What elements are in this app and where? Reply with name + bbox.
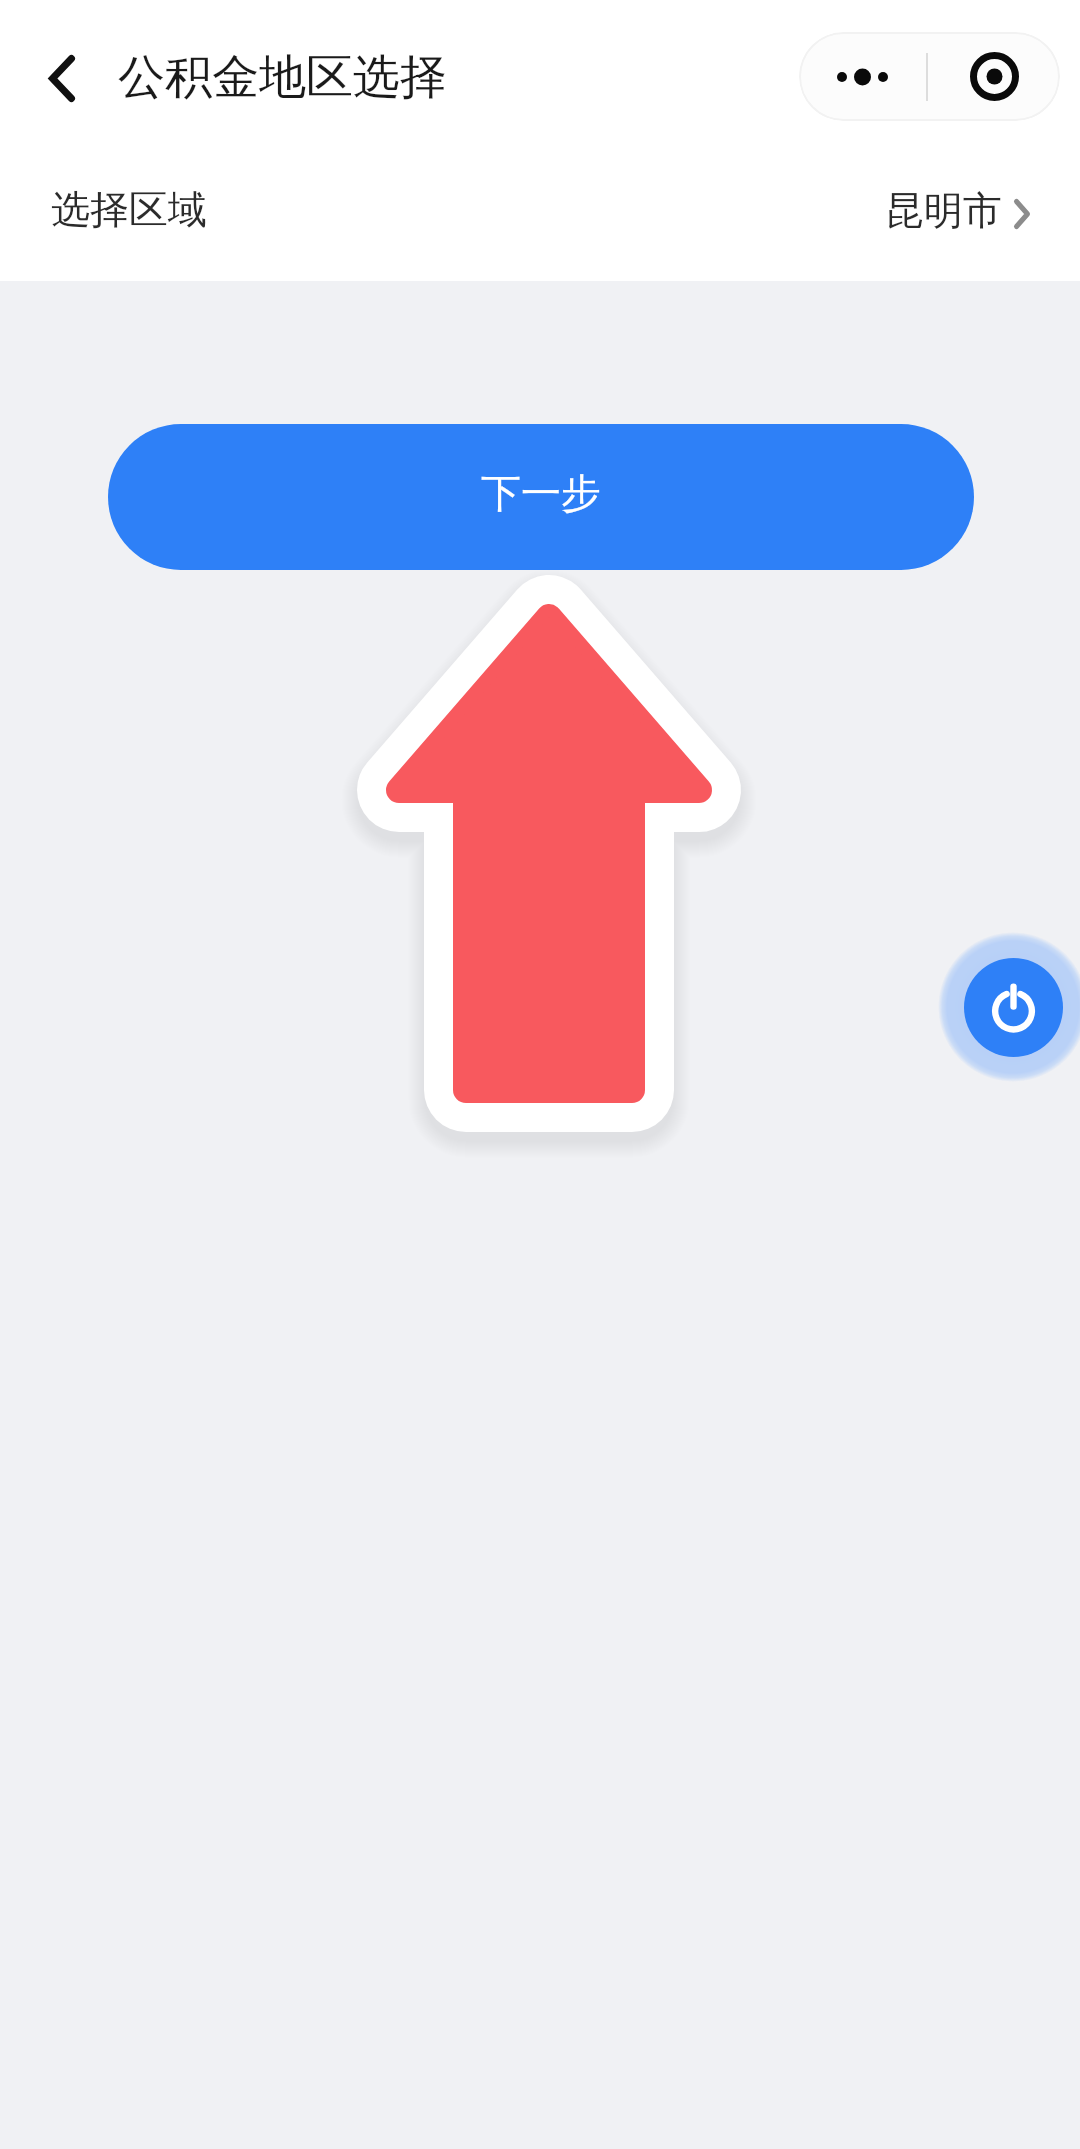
button[interactable]: Back [21, 37, 103, 119]
button[interactable]: 昆明市 [840, 160, 1050, 260]
button[interactable]: Close mini program [928, 32, 1060, 121]
button[interactable]: More options [799, 32, 926, 121]
staticText: 公积金地区选择 [118, 48, 447, 107]
button[interactable]: 下一步 [108, 424, 974, 570]
staticText: 昆明市 [885, 186, 1002, 235]
staticText: 选择区域 [51, 185, 207, 234]
button[interactable]: Power [964, 958, 1063, 1057]
staticText: 下一步 [481, 468, 601, 518]
